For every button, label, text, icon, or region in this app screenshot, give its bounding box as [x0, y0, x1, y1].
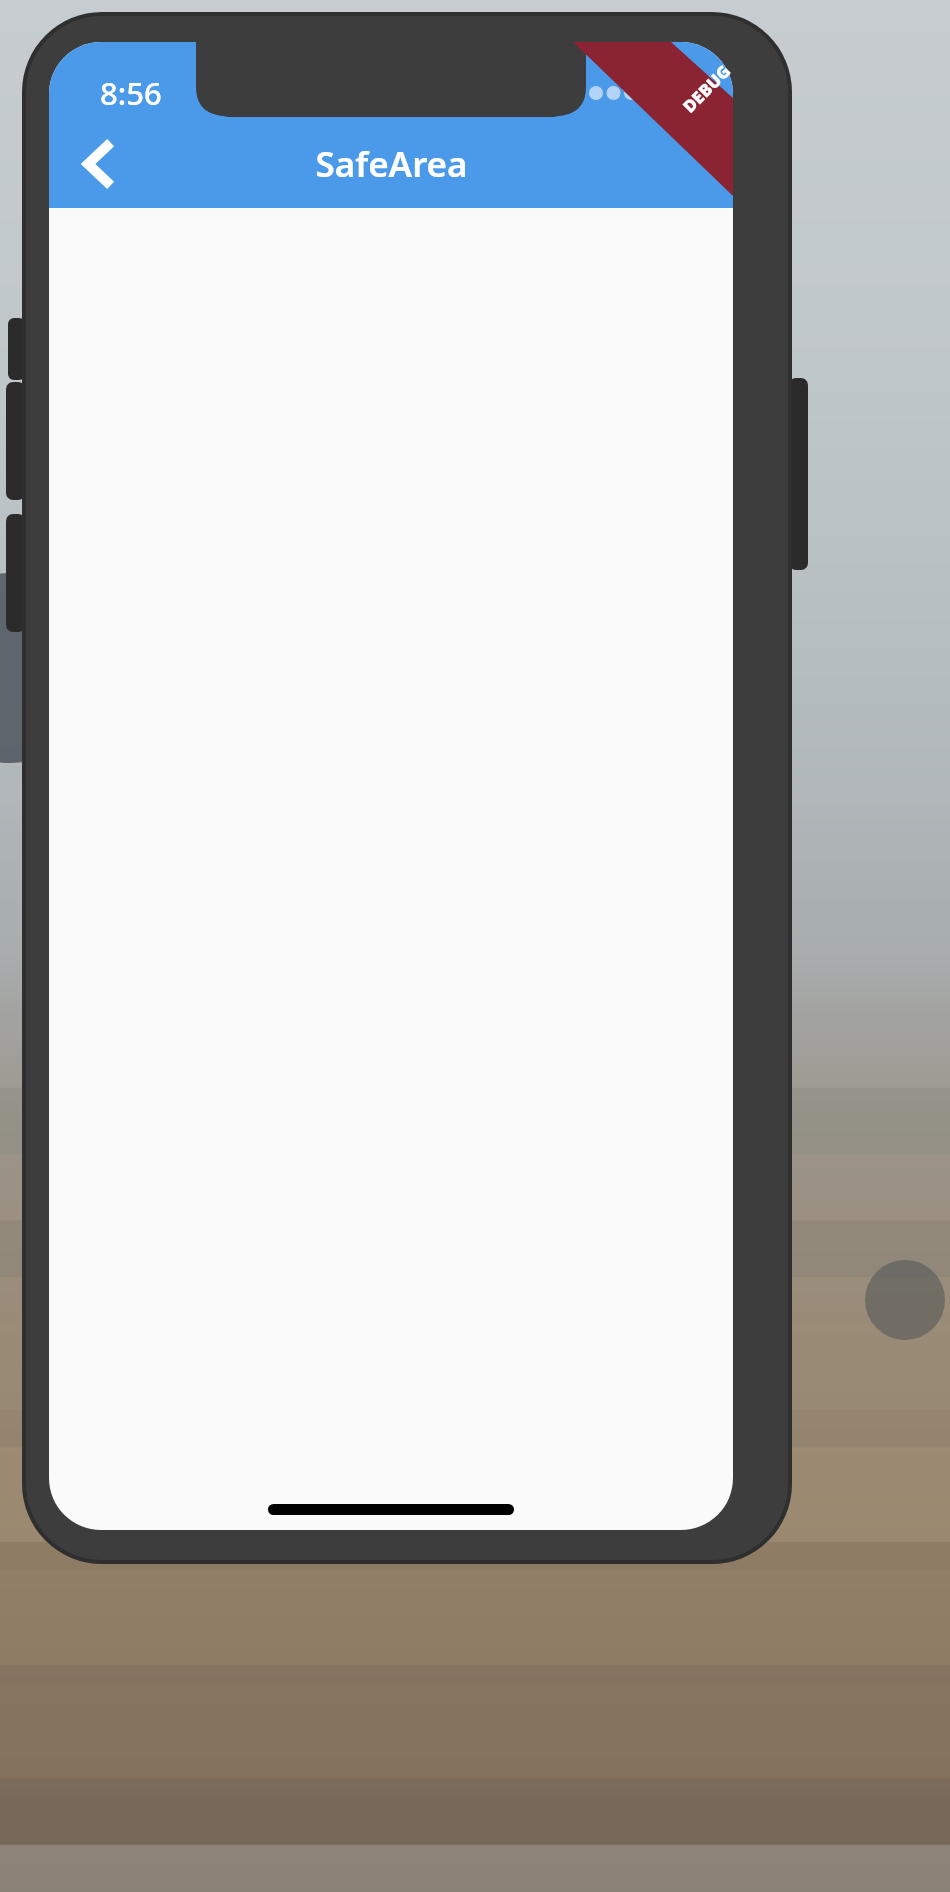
staticText: SafeArea: [315, 140, 468, 188]
staticText: DEBUG: [677, 59, 735, 117]
button[interactable]: Back: [64, 130, 130, 196]
staticText: 8:56: [100, 72, 162, 114]
